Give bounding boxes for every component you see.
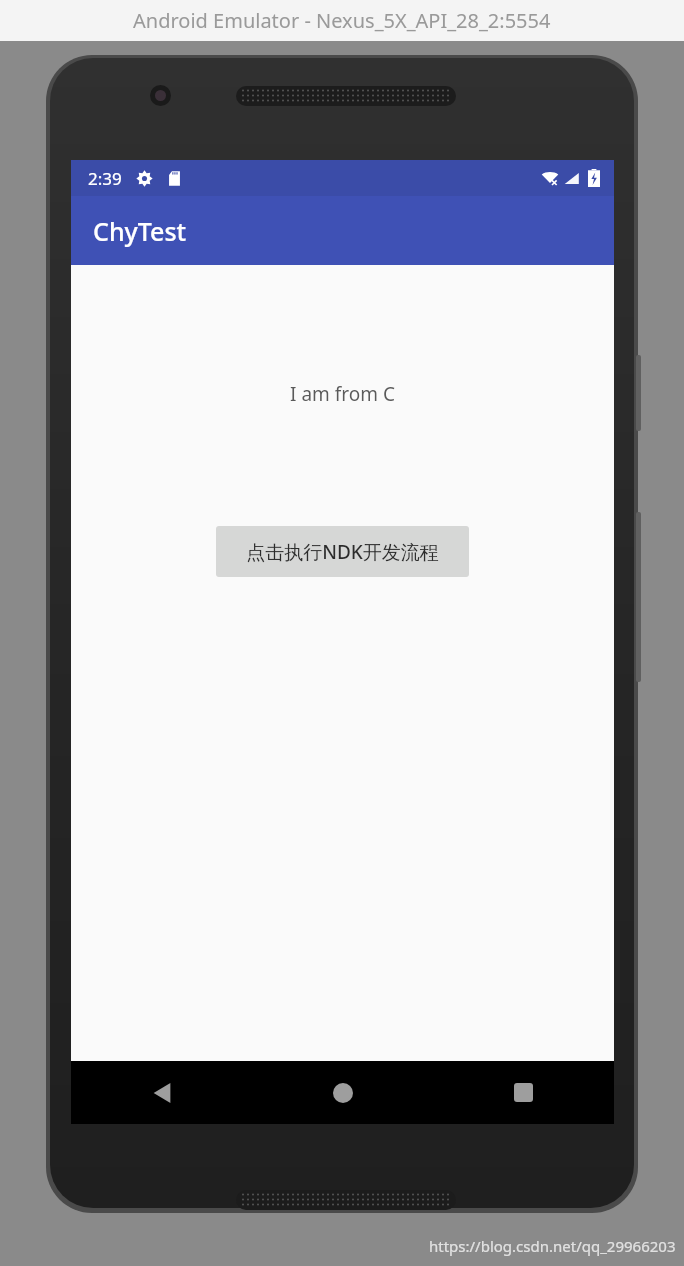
button[interactable]: 点击执行NDK开发流程	[216, 526, 469, 577]
staticText: 点击执行NDK开发流程	[246, 539, 439, 565]
button[interactable]: Recent apps	[433, 1061, 614, 1124]
staticText: 2:39	[88, 167, 122, 190]
button[interactable]: Back	[71, 1061, 252, 1124]
staticText: Android Emulator - Nexus_5X_API_28_2:555…	[133, 7, 551, 34]
staticText: ChyTest	[93, 214, 187, 248]
staticText: https://blog.csdn.net/qq_29966203	[429, 1236, 676, 1256]
button[interactable]: Home	[252, 1061, 433, 1124]
staticText: I am from C	[290, 381, 395, 407]
